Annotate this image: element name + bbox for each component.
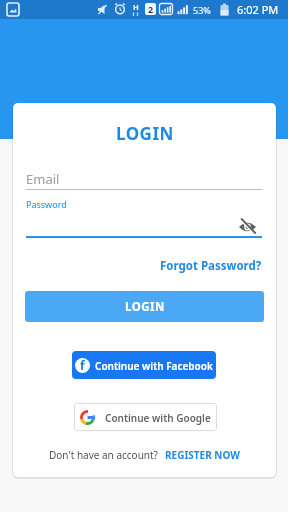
staticText: Continue with Google [105,411,211,425]
button[interactable]: Continue with Google [74,403,217,431]
staticText: LOGIN [116,122,174,145]
button[interactable]: Email [26,167,262,191]
staticText: Don't have an account? [49,448,158,462]
button[interactable]: LOGIN [25,291,264,322]
staticText: Continue with Facebook [95,359,213,373]
staticText: REGISTER NOW [165,448,240,462]
staticText: 6:02 PM [237,2,279,17]
button[interactable]: f [72,351,216,379]
staticText: H [133,2,139,12]
staticText: Password [26,198,67,210]
button[interactable] [235,216,259,238]
staticText: 2 [148,3,154,15]
button[interactable]: REGISTER NOW [165,448,240,462]
staticText: 53% [193,4,211,16]
staticText: f [80,358,85,372]
button[interactable]: Password [26,198,262,238]
staticText: Email [26,170,60,188]
button[interactable]: Forgot Password? [160,258,262,274]
staticText: Forgot Password? [160,258,262,274]
staticText: LOGIN [125,299,165,315]
